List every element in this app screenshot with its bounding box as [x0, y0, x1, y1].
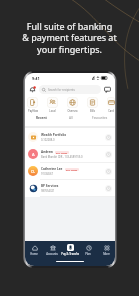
- button[interactable]: Plan: [79, 244, 97, 256]
- staticText: A: [32, 152, 35, 157]
- button[interactable]: A: [25, 146, 115, 162]
- staticText: Local: [49, 109, 56, 113]
- staticText: Wealth Portfolio: [41, 133, 67, 137]
- staticText: Accounts: [46, 252, 58, 256]
- staticText: 9:41: [32, 76, 40, 81]
- staticText: Pay & Transfer: [61, 252, 79, 256]
- button[interactable]: Notifications: [28, 85, 37, 94]
- button[interactable]: Transfer: [105, 151, 112, 158]
- button[interactable]: Transfer: [105, 134, 112, 141]
- button[interactable]: All: [56, 116, 85, 122]
- staticText: Full suite of banking & payment features…: [22, 20, 117, 56]
- staticText: Search for recipients: [48, 88, 75, 92]
- staticText: Favourites: [92, 116, 108, 120]
- button[interactable]: Wealth Portfolio: [25, 129, 115, 145]
- staticText: Bank Mandiri IDR - 133-4589159-0: [41, 155, 83, 159]
- staticText: Card: [108, 109, 114, 113]
- button[interactable]: CL: [25, 163, 115, 179]
- staticText: BP Services: [41, 184, 59, 188]
- staticText: Bills: [90, 109, 95, 113]
- staticText: Catherine Lee: [41, 167, 63, 171]
- button[interactable]: Local: [47, 97, 58, 113]
- button[interactable]: Search for recipients: [39, 85, 101, 94]
- button[interactable]: BP Services: [25, 180, 115, 196]
- staticText: Andrew: [41, 150, 53, 154]
- staticText: All: [69, 116, 73, 120]
- staticText: Plan: [85, 252, 91, 256]
- staticText: PAY NOW: [56, 151, 68, 154]
- button[interactable]: PayNow: [27, 97, 38, 113]
- button[interactable]: Chat: [103, 85, 112, 94]
- button[interactable]: Bills: [87, 97, 98, 113]
- staticText: Recent: [36, 116, 47, 120]
- button[interactable]: Accounts: [43, 244, 61, 256]
- button[interactable]: Overseas: [67, 97, 78, 113]
- button[interactable]: Home: [25, 244, 43, 256]
- staticText: More: [103, 252, 110, 256]
- staticText: CL: [31, 169, 35, 174]
- button[interactable]: More: [97, 244, 115, 256]
- staticText: 987654321: [41, 189, 55, 193]
- button[interactable]: Recent: [26, 116, 56, 122]
- button[interactable]: Transfer: [105, 185, 112, 192]
- button[interactable]: Pay & Transfer: [61, 244, 79, 256]
- button[interactable]: Transfer: [105, 168, 112, 175]
- staticText: Overseas: [67, 109, 78, 113]
- staticText: PAY NOW: [66, 168, 78, 171]
- button[interactable]: Favourites: [85, 116, 114, 122]
- staticText: Home: [30, 252, 38, 256]
- staticText: 91334567: [41, 172, 53, 176]
- staticText: 0-102288-0: [41, 138, 55, 142]
- button[interactable]: Card: [107, 97, 115, 113]
- staticText: PayNow: [28, 109, 38, 113]
